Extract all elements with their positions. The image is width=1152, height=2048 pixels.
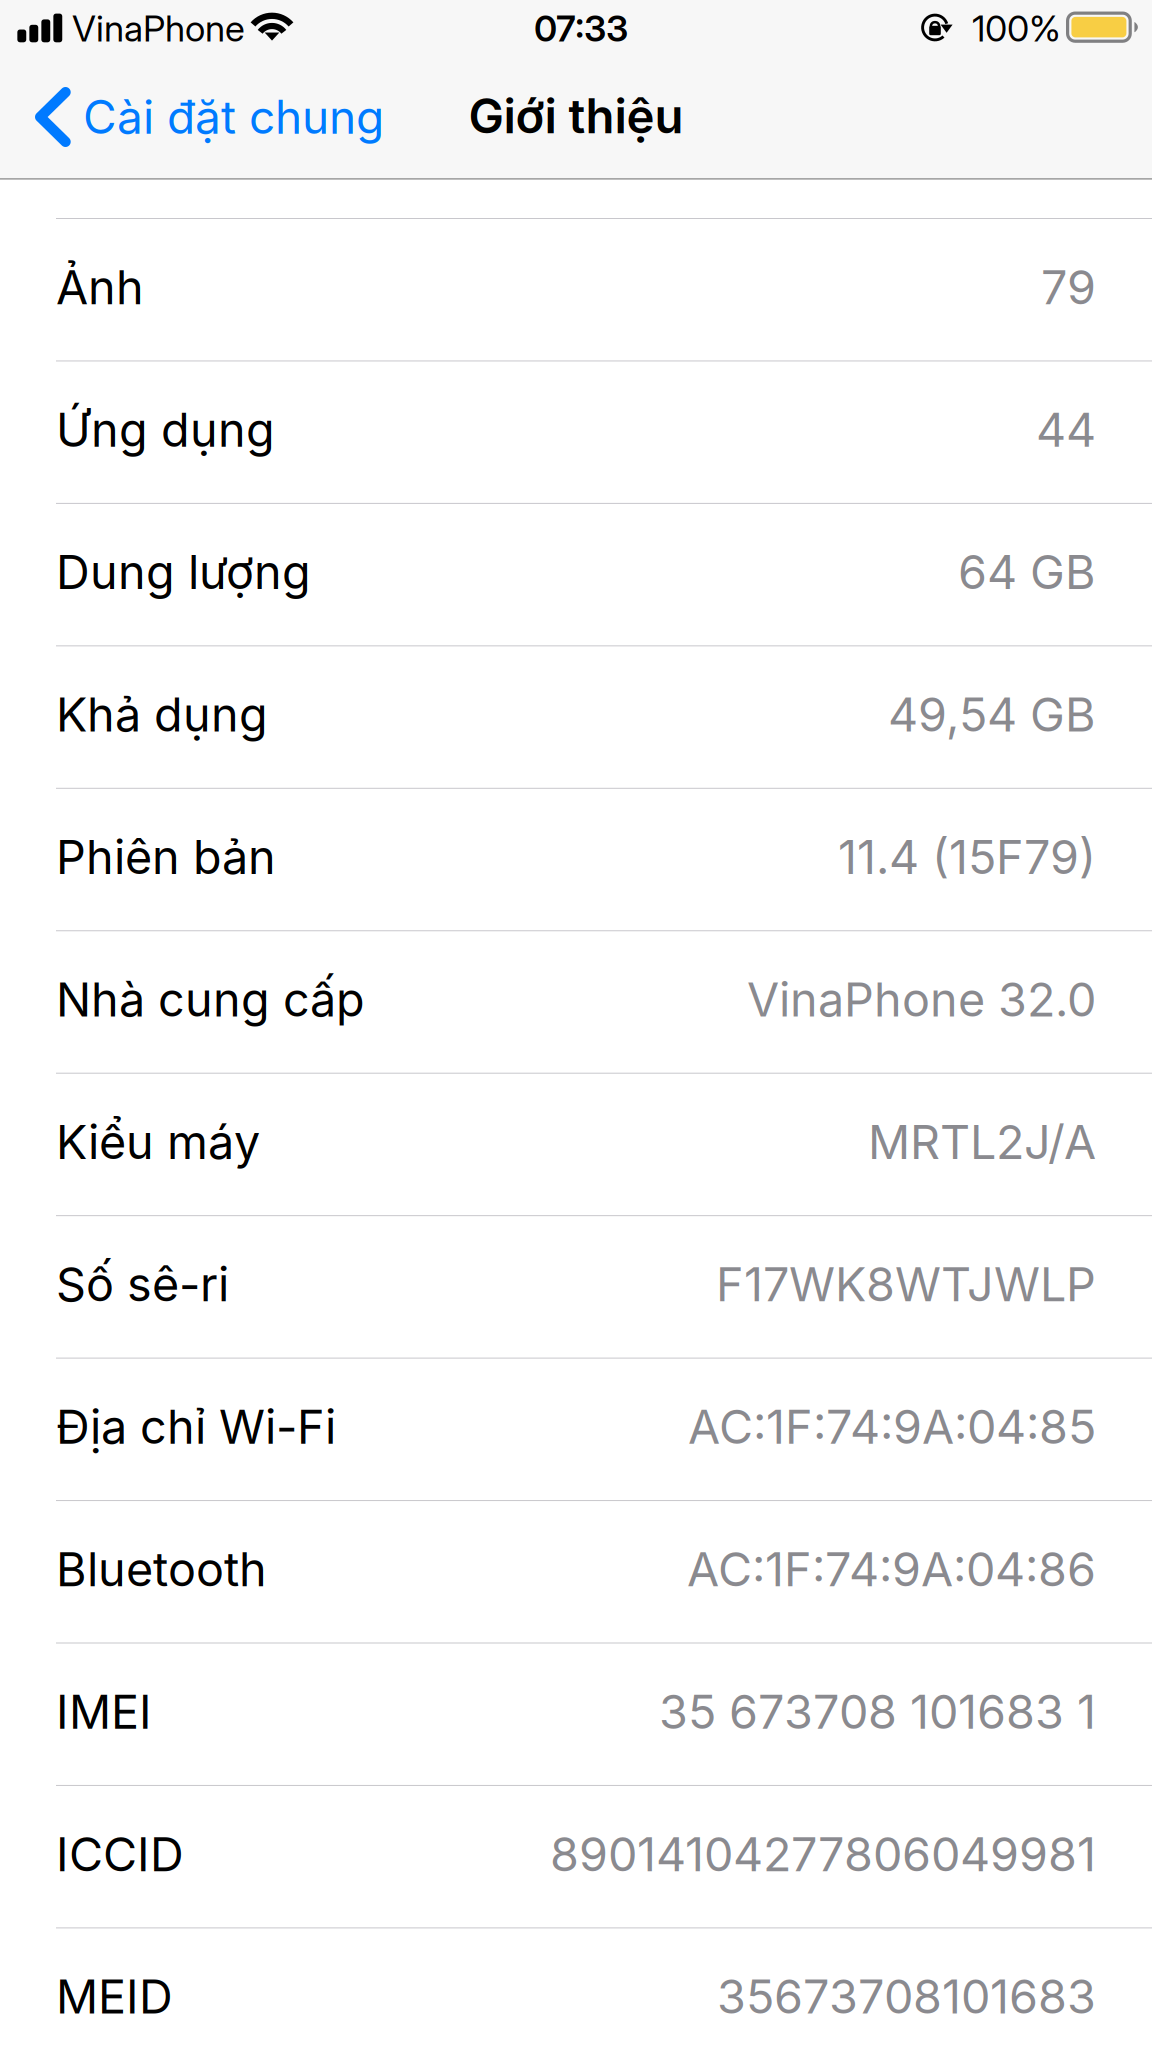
staticText: Ảnh [56, 259, 144, 315]
staticText: Nhà cung cấp [56, 971, 365, 1028]
button[interactable]: Phiên bản [0, 789, 1152, 931]
staticText: Bluetooth [56, 1541, 267, 1597]
staticText: F17WK8WTJWLP [716, 1256, 1096, 1313]
staticText: 35 673708 101683 1 [659, 1683, 1096, 1740]
button[interactable]: MEID [0, 1928, 1152, 2048]
button[interactable]: Cài đặt chung [0, 62, 408, 178]
staticText: ICCID [56, 1826, 184, 1882]
staticText: Kiểu máy [56, 1114, 260, 1170]
button[interactable]: Địa chỉ Wi-Fi [0, 1359, 1152, 1501]
staticText: 44 [1036, 401, 1096, 458]
staticText: VinaPhone [72, 6, 245, 50]
staticText: 100% [972, 6, 1061, 50]
staticText: Ứng dụng [56, 401, 275, 458]
staticText: 89014104277806049981 [550, 1826, 1096, 1882]
staticText: AC:1F:74:9A:04:85 [688, 1399, 1096, 1455]
staticText: AC:1F:74:9A:04:86 [687, 1541, 1096, 1597]
button[interactable]: Ứng dụng [0, 361, 1152, 504]
staticText: Khả dụng [56, 686, 268, 743]
staticText: Giới thiệu [468, 87, 683, 145]
staticText: Dung lượng [56, 544, 311, 600]
button[interactable]: Khả dụng [0, 646, 1152, 789]
button[interactable]: Dung lượng [0, 504, 1152, 646]
button[interactable]: ICCID [0, 1786, 1152, 1928]
staticText: Số sê-ri [56, 1256, 229, 1313]
staticText: Cài đặt chung [83, 89, 384, 145]
staticText: 64 GB [958, 544, 1096, 600]
staticText: Phiên bản [56, 829, 276, 885]
button[interactable]: Nhà cung cấp [0, 931, 1152, 1074]
staticText: 07:33 [534, 6, 628, 50]
staticText: VinaPhone 32.0 [747, 971, 1096, 1028]
button[interactable]: Kiểu máy [0, 1074, 1152, 1216]
staticText: IMEI [56, 1683, 152, 1740]
button[interactable]: Bluetooth [0, 1501, 1152, 1643]
button[interactable]: Ảnh [0, 219, 1152, 361]
button[interactable]: IMEI [0, 1643, 1152, 1786]
staticText: 35673708101683 [717, 1968, 1096, 2025]
staticText: 49,54 GB [888, 686, 1096, 743]
staticText: 79 [1041, 259, 1096, 315]
staticText: MRTL2J/A [868, 1114, 1096, 1170]
staticText: 11.4 (15F79) [838, 829, 1096, 885]
button[interactable]: Số sê-ri [0, 1216, 1152, 1358]
staticText: MEID [56, 1968, 173, 2025]
staticText: Địa chỉ Wi-Fi [56, 1399, 336, 1455]
